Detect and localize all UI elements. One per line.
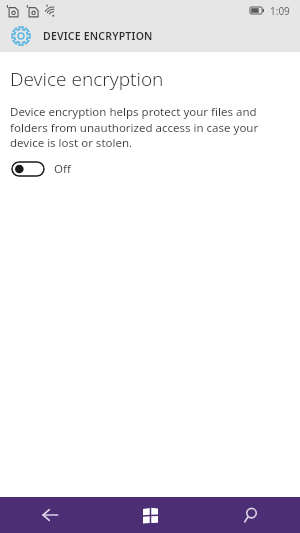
button[interactable]: Off [11, 161, 71, 177]
button[interactable]: DEVICE ENCRYPTION [0, 20, 300, 52]
staticText: Off [54, 161, 71, 177]
staticText: DEVICE ENCRYPTION [43, 29, 153, 43]
button[interactable]: Back [0, 497, 100, 533]
staticText: Device encryption [10, 66, 164, 92]
button[interactable]: Start [100, 497, 200, 533]
staticText: Device encryption helps protect your fil… [10, 104, 288, 150]
staticText: 1:09 [270, 4, 290, 18]
button[interactable]: Search [200, 497, 300, 533]
